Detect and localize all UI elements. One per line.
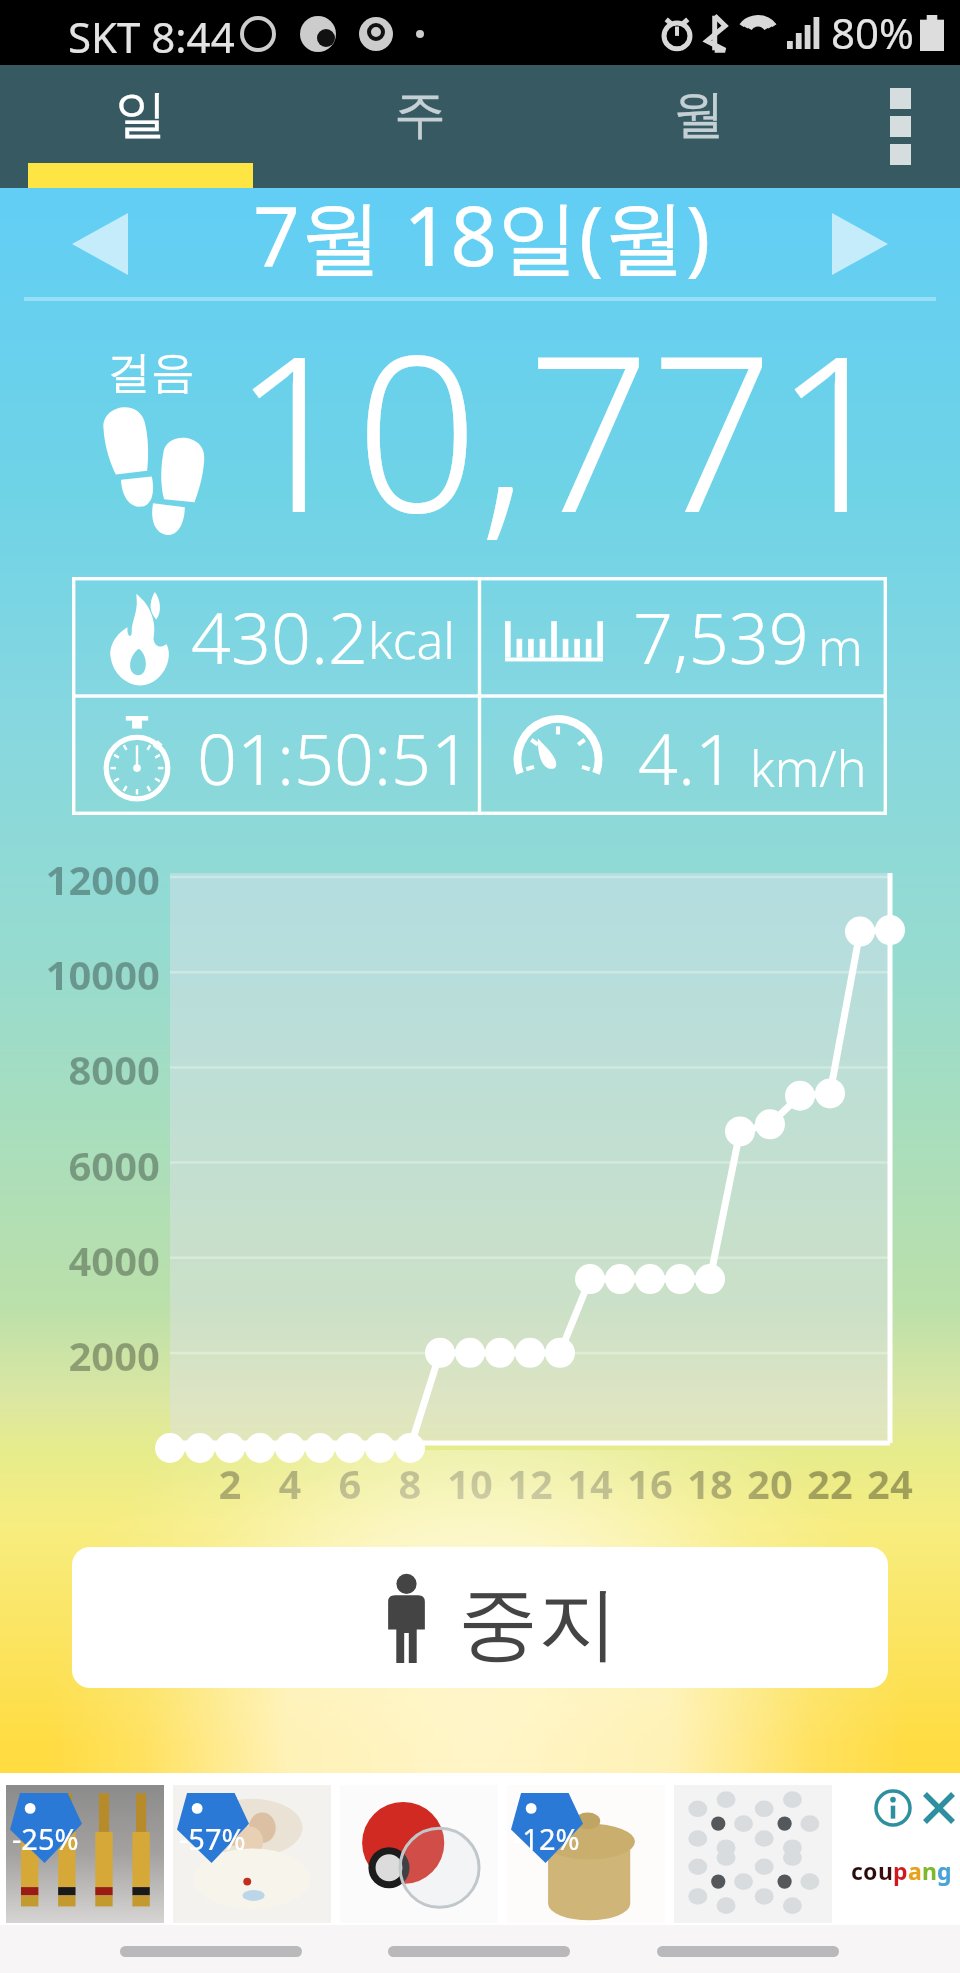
button[interactable]: 중지 (72, 1547, 888, 1688)
staticText: 4000 (0, 1233, 160, 1287)
button[interactable]: Previous day (30, 188, 170, 300)
staticText: c (851, 1855, 863, 1886)
button[interactable]: More options (840, 65, 960, 188)
staticText: 6000 (0, 1138, 160, 1192)
button[interactable]: Navigation (388, 1946, 570, 1957)
staticText: 8 (370, 1456, 450, 1510)
staticText: kcal (368, 606, 455, 674)
staticText: 10 (430, 1456, 510, 1510)
staticText: 걸음 (107, 345, 195, 400)
staticText: 24 (850, 1456, 930, 1510)
staticText: u (878, 1855, 893, 1886)
staticText: 2 (190, 1456, 270, 1510)
button[interactable]: -57% (173, 1785, 331, 1923)
staticText: SKT 8:44 (68, 8, 235, 65)
staticText: a (908, 1855, 922, 1886)
button[interactable]: 일 (28, 65, 253, 188)
button[interactable] (340, 1785, 498, 1923)
staticText: 6 (310, 1456, 390, 1510)
staticText: 10,771 (232, 281, 898, 575)
staticText: m (818, 613, 863, 681)
staticText: 4.1 (638, 710, 736, 805)
staticText: p (893, 1855, 908, 1886)
staticText: 12 (490, 1456, 570, 1510)
staticText: 01:50:51 (197, 710, 471, 805)
staticText: 2000 (0, 1328, 160, 1382)
staticText: n (922, 1855, 937, 1886)
button[interactable] (674, 1785, 832, 1923)
button[interactable]: -12% (507, 1785, 665, 1923)
staticText: -57% (179, 1819, 246, 1858)
button[interactable]: -25% (6, 1785, 164, 1923)
button[interactable]: 월 (586, 65, 811, 188)
staticText: 18 (670, 1456, 750, 1510)
staticText: 20 (730, 1456, 810, 1510)
staticText: g (937, 1855, 952, 1886)
staticText: 8000 (0, 1042, 160, 1096)
staticText: 주 (394, 82, 446, 148)
staticText: 22 (790, 1456, 870, 1510)
staticText: 80% (831, 4, 914, 61)
staticText: 7,539 (633, 589, 809, 684)
button[interactable]: Navigation (657, 1946, 839, 1957)
staticText: 10000 (0, 947, 160, 1001)
staticText: -12% (513, 1819, 580, 1858)
staticText: 4 (250, 1456, 330, 1510)
button[interactable]: Next day (790, 188, 930, 300)
staticText: o (863, 1855, 878, 1886)
staticText: 14 (550, 1456, 630, 1510)
button[interactable]: Navigation (120, 1946, 302, 1957)
staticText: 430.2 (191, 589, 368, 684)
staticText: 7월 18일(월) (253, 178, 711, 290)
staticText: -25% (12, 1819, 79, 1858)
staticText: 중지 (458, 1574, 618, 1675)
staticText: 16 (610, 1456, 690, 1510)
button[interactable]: 주 (307, 65, 532, 188)
staticText: km/h (750, 734, 867, 802)
staticText: 월 (673, 82, 725, 148)
staticText: 일 (115, 82, 167, 148)
staticText: 12000 (0, 852, 160, 906)
